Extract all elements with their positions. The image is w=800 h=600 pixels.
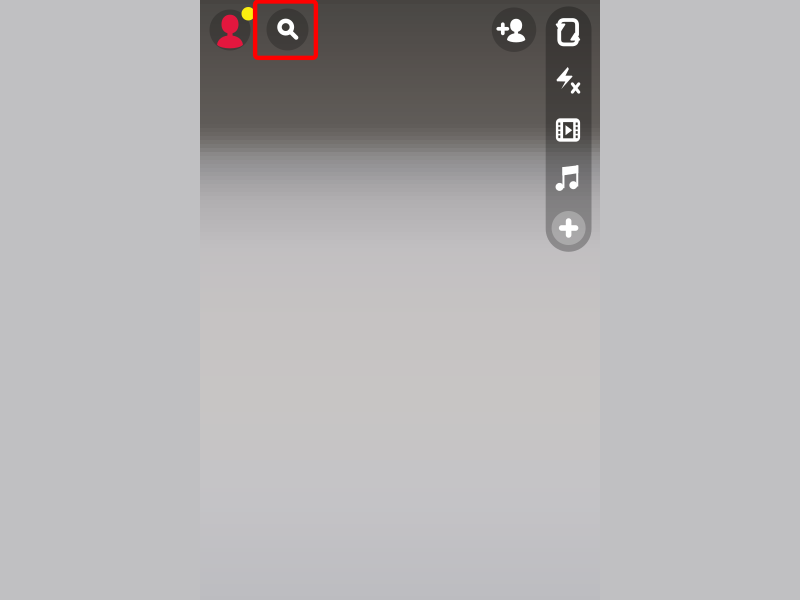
button[interactable]: Flip camera (546, 9, 591, 56)
button[interactable]: Add music (546, 156, 591, 200)
button[interactable]: More options (546, 207, 591, 249)
button[interactable]: Video (546, 109, 591, 151)
button[interactable]: Search (266, 8, 308, 50)
button[interactable]: Profile (209, 9, 250, 50)
button[interactable]: Flash off (546, 56, 591, 104)
button[interactable]: Add friends (492, 7, 536, 52)
